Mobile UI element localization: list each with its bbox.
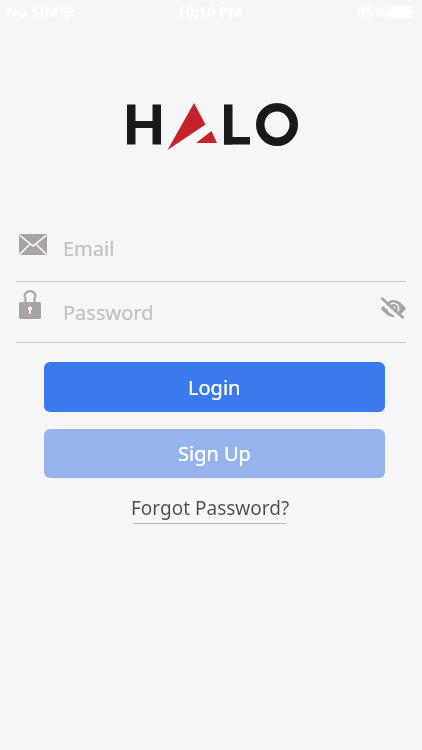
staticText: 85% [357,1,388,21]
button[interactable]: Forgot Password? [120,494,300,528]
staticText: Email [63,235,115,262]
staticText: Sign Up [178,440,251,467]
staticText: No SIM [6,1,59,21]
button[interactable]: Sign Up [44,429,385,478]
staticText: Forgot Password? [131,495,290,521]
button[interactable]: Email [16,228,406,280]
button[interactable]: Login [44,362,385,412]
button[interactable] [381,298,406,319]
staticText: 10:10 PM [177,1,243,21]
staticText: Login [188,374,241,401]
button[interactable]: Password [16,286,406,341]
staticText: Password [63,299,154,326]
